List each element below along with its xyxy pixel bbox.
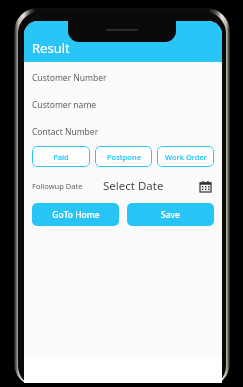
staticText: Postpone — [107, 152, 141, 162]
button[interactable]: Postpone — [95, 146, 152, 167]
staticText: Result — [32, 39, 70, 57]
button[interactable]: Save — [127, 203, 214, 226]
button[interactable]: Work Order — [157, 146, 214, 167]
staticText: Paid — [53, 152, 69, 162]
button[interactable]: Customer name — [32, 98, 214, 111]
button[interactable]: Pick date — [196, 177, 214, 195]
button[interactable]: Contact Number — [32, 125, 214, 138]
button[interactable]: GoTo Home — [32, 203, 119, 226]
button[interactable]: Select Date — [103, 178, 196, 194]
staticText: Select Date — [103, 178, 164, 194]
staticText: Contact Number — [32, 126, 99, 138]
staticText: GoTo Home — [52, 209, 100, 221]
button[interactable]: Customer Number — [32, 71, 214, 84]
staticText: Work Order — [165, 152, 207, 162]
button[interactable]: Paid — [32, 146, 90, 167]
staticText: Customer name — [32, 99, 97, 111]
staticText: Followup Date — [32, 181, 83, 191]
staticText: Save — [161, 209, 180, 221]
staticText: Customer Number — [32, 72, 107, 84]
